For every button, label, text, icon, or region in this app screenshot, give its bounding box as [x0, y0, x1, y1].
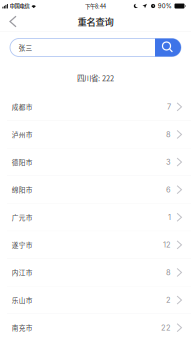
staticText: 乐山市	[12, 295, 33, 305]
button[interactable]: Back	[0, 12, 25, 31]
button[interactable]: 南充市	[0, 314, 191, 340]
staticText: 张三	[18, 43, 32, 52]
button[interactable]: 德阳市	[0, 148, 191, 176]
staticText: 绵阳市	[12, 185, 33, 194]
staticText: 中国电信	[9, 2, 29, 10]
staticText: 12	[163, 240, 171, 249]
button[interactable]: 绵阳市	[0, 176, 191, 204]
staticText: 德阳市	[12, 157, 33, 167]
staticText: 下午8:44	[85, 2, 106, 10]
button[interactable]: 遂宁市	[0, 231, 191, 259]
staticText: 重名查询	[77, 15, 113, 28]
staticText: 成都市	[12, 102, 33, 112]
button[interactable]: 内江市	[0, 259, 191, 286]
staticText: 1	[168, 213, 171, 222]
staticText: 泸州市	[12, 130, 33, 139]
staticText: 3	[166, 157, 171, 166]
button[interactable]: 广元市	[0, 204, 191, 231]
staticText: 四川省: 222	[77, 72, 114, 83]
staticText: 90%	[158, 2, 172, 10]
staticText: 2	[166, 295, 171, 304]
staticText: 7	[167, 102, 171, 111]
button[interactable]: 泸州市	[0, 121, 191, 148]
button[interactable]: 成都市	[0, 93, 191, 121]
staticText: 遂宁市	[12, 240, 33, 250]
staticText: 6	[166, 185, 171, 194]
staticText: 8	[166, 130, 171, 139]
button[interactable]: 乐山市	[0, 286, 191, 314]
button[interactable]: Search	[155, 38, 181, 56]
staticText: 南充市	[12, 323, 33, 332]
staticText: 内江市	[12, 268, 33, 277]
staticText: 广元市	[12, 212, 33, 222]
staticText: 8	[166, 268, 171, 277]
staticText: 22	[161, 323, 171, 332]
